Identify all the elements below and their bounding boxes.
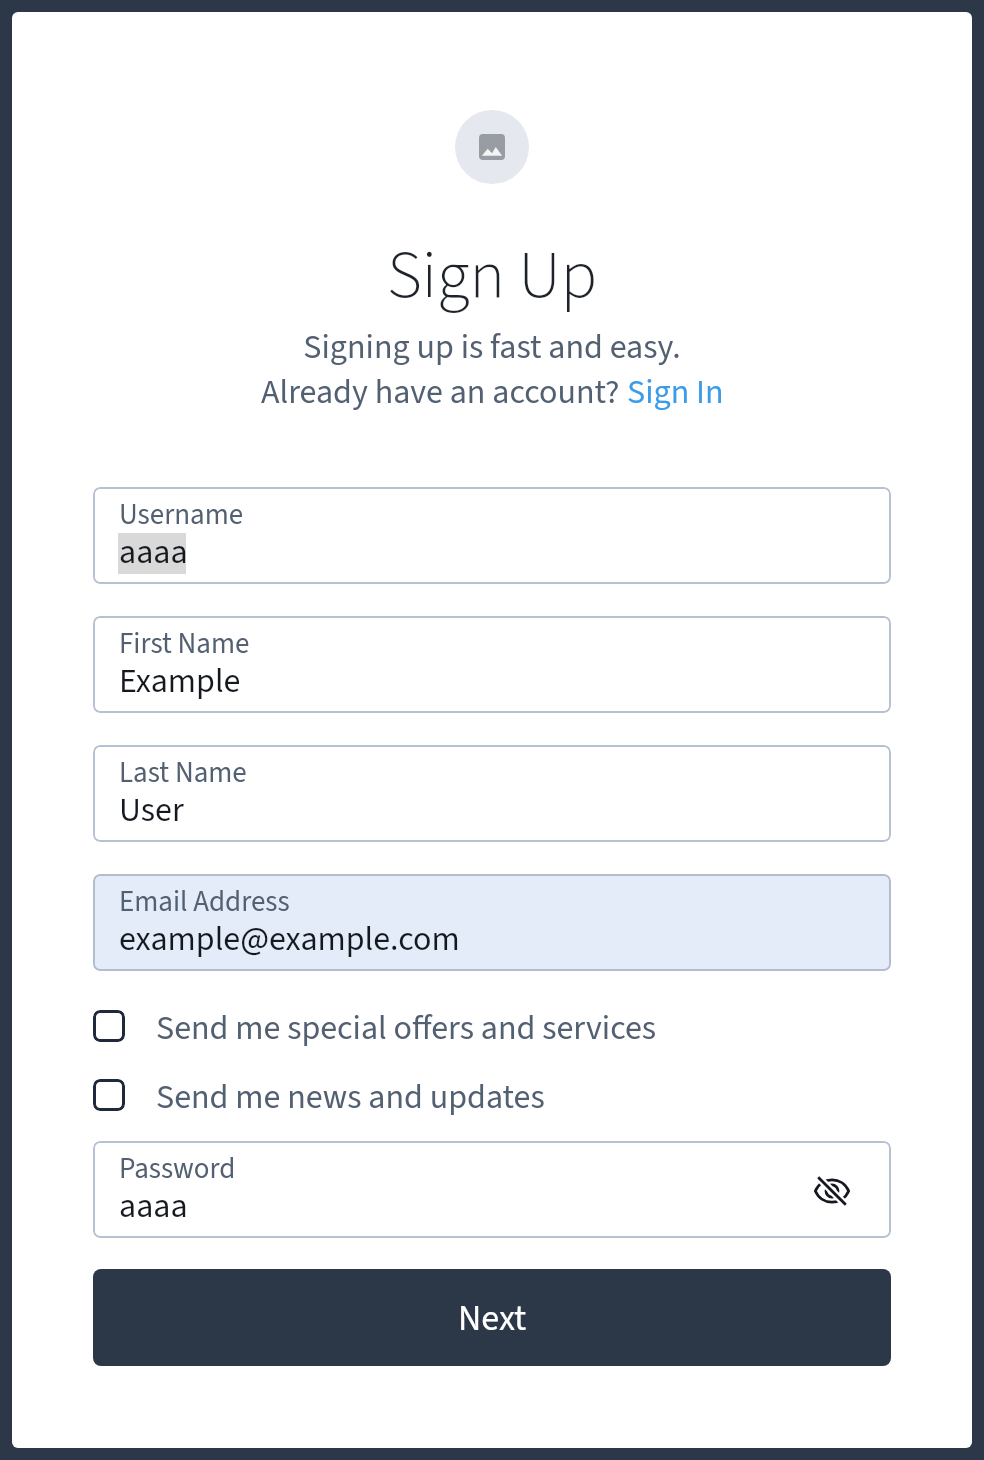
staticText: example@example.com (119, 915, 460, 963)
staticText: Sign Up (12, 228, 972, 323)
button[interactable]: Last Name (93, 745, 891, 842)
staticText: Send me news and updates (156, 1073, 545, 1121)
staticText: Sign In (627, 368, 724, 416)
staticText: aaaa (119, 1182, 188, 1230)
staticText: User (119, 786, 184, 834)
staticText: aaaa (119, 528, 188, 576)
staticText: Next (458, 1293, 527, 1344)
staticText: Last Name (119, 752, 247, 793)
staticText: Already have an account? (261, 368, 627, 416)
button[interactable]: Show password (808, 1167, 856, 1215)
button[interactable]: First Name (93, 616, 891, 713)
button[interactable]: Profile photo (455, 110, 529, 184)
staticText: Example (119, 657, 241, 705)
staticText: Username (119, 494, 244, 535)
staticText: Email Address (119, 881, 290, 922)
staticText: Signing up is fast and easy. (12, 323, 972, 371)
staticText: Password (119, 1148, 236, 1189)
button[interactable]: Username (93, 487, 891, 584)
staticText: Send me special offers and services (156, 1004, 657, 1052)
button[interactable]: Send me special offers and services (93, 1010, 891, 1058)
button[interactable]: Email Address (93, 874, 891, 971)
staticText: First Name (119, 623, 250, 664)
button[interactable]: Send me news and updates (93, 1079, 891, 1127)
button[interactable]: Password (93, 1141, 891, 1238)
button[interactable]: Next (93, 1269, 891, 1366)
button[interactable]: Sign In (627, 368, 724, 416)
